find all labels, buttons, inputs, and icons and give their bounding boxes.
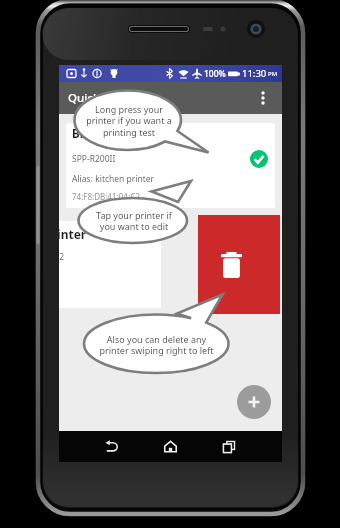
button[interactable]: Recent apps [209,431,249,462]
staticText: QuickPrint [68,90,127,106]
button[interactable]: Back [91,431,131,462]
staticText: Long press your printer if you want a pr… [86,103,172,139]
staticText: Bixolon [72,126,115,142]
staticText: Also you can delete any printer swiping … [99,333,214,357]
button[interactable]: Home [150,431,190,462]
staticText: SPP-R200II [72,153,116,165]
button[interactable]: Delete printer [198,215,280,314]
staticText: Tap your printer if you want to edit [96,209,172,233]
staticText: 11:30 [242,67,267,80]
staticText: Alias: kitchen printer [72,173,155,185]
staticText: 100% [204,68,226,80]
button[interactable]: Add printer [237,385,271,419]
button[interactable]: Bixolon [66,123,275,208]
button[interactable]: More options [250,85,276,111]
staticText: PM [268,70,278,78]
button[interactable]: Zebra printer [59,221,161,308]
staticText: Alias: reception 00:19:0E:0C:1B:2 [59,251,65,263]
staticText: Zebra printer [59,226,87,242]
staticText: 74:F8:DB:41:0A:C2 [72,191,141,202]
